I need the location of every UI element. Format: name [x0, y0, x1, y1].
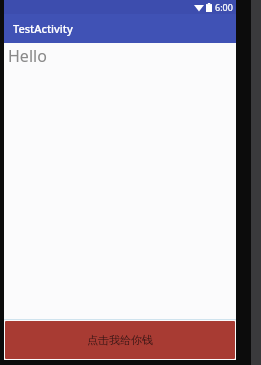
- staticText: 6:00: [215, 1, 233, 13]
- staticText: Hello: [8, 45, 47, 67]
- staticText: 点击我给你钱: [87, 333, 153, 347]
- button[interactable]: 点击我给你钱: [5, 321, 235, 359]
- staticText: TestActivity: [13, 21, 73, 36]
